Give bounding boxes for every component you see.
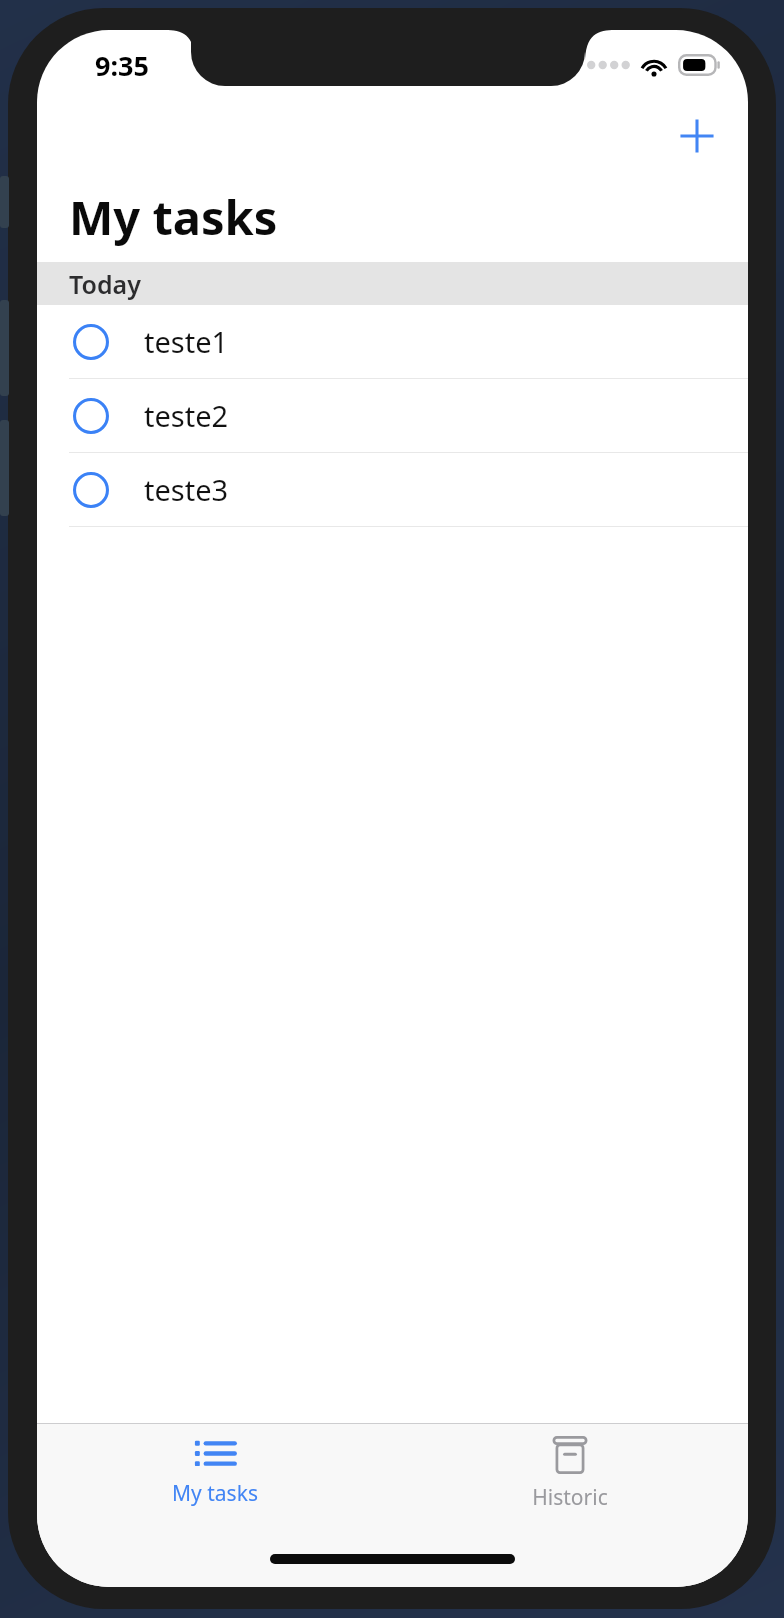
button[interactable]: Historic [392,1424,748,1512]
button[interactable]: Mark teste3 complete [69,468,113,512]
staticText: Historic [532,1483,608,1512]
staticText: My tasks [69,185,278,249]
button[interactable]: My tasks [37,1424,392,1508]
staticText: Today [69,267,141,301]
staticText: teste2 [144,396,229,435]
staticText: teste1 [144,322,229,361]
button[interactable]: Mark teste2 complete [37,379,748,453]
button[interactable]: Mark teste1 complete [69,320,113,364]
button[interactable]: Add task [668,107,726,165]
staticText: My tasks [172,1479,258,1508]
button[interactable]: Mark teste2 complete [69,394,113,438]
button[interactable]: Mark teste3 complete [37,453,748,527]
button[interactable]: Mark teste1 complete [37,305,748,379]
staticText: 9:35 [95,47,149,84]
staticText: teste3 [144,470,229,509]
